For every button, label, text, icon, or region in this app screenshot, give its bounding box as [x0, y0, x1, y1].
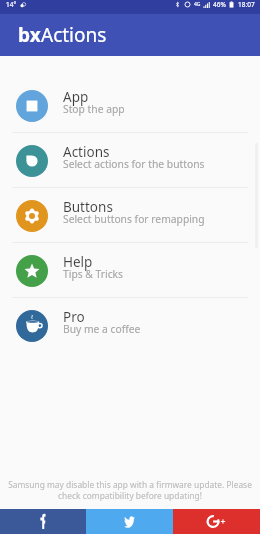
staticText: Samsung may disable this app with a firm…: [4, 479, 256, 501]
staticText: Stop the app: [63, 102, 125, 116]
staticText: Help: [63, 253, 93, 271]
button[interactable]: Help: [0, 243, 260, 298]
button[interactable]: Pro: [0, 298, 260, 353]
staticText: bx: [18, 22, 41, 48]
staticText: Actions: [41, 22, 107, 48]
staticText: 14°: [6, 0, 17, 9]
button[interactable]: Buttons: [0, 188, 260, 243]
staticText: Buttons: [63, 198, 113, 216]
button[interactable]: Share on Facebook: [0, 509, 86, 534]
staticText: App: [63, 88, 89, 106]
staticText: Tips & Tricks: [63, 267, 124, 281]
staticText: 46%: [213, 0, 226, 9]
staticText: Buy me a coffee: [63, 322, 141, 336]
staticText: Select buttons for remapping: [63, 212, 205, 226]
button[interactable]: Actions: [0, 133, 260, 188]
button[interactable]: Share on Google Plus: [173, 509, 260, 534]
staticText: 4G: [194, 1, 201, 8]
button[interactable]: Share on Twitter: [86, 509, 173, 534]
staticText: Pro: [63, 308, 85, 326]
staticText: Select actions for the buttons: [63, 157, 205, 171]
button[interactable]: App: [0, 78, 260, 133]
staticText: Actions: [63, 143, 110, 161]
staticText: 18:07: [238, 0, 255, 9]
